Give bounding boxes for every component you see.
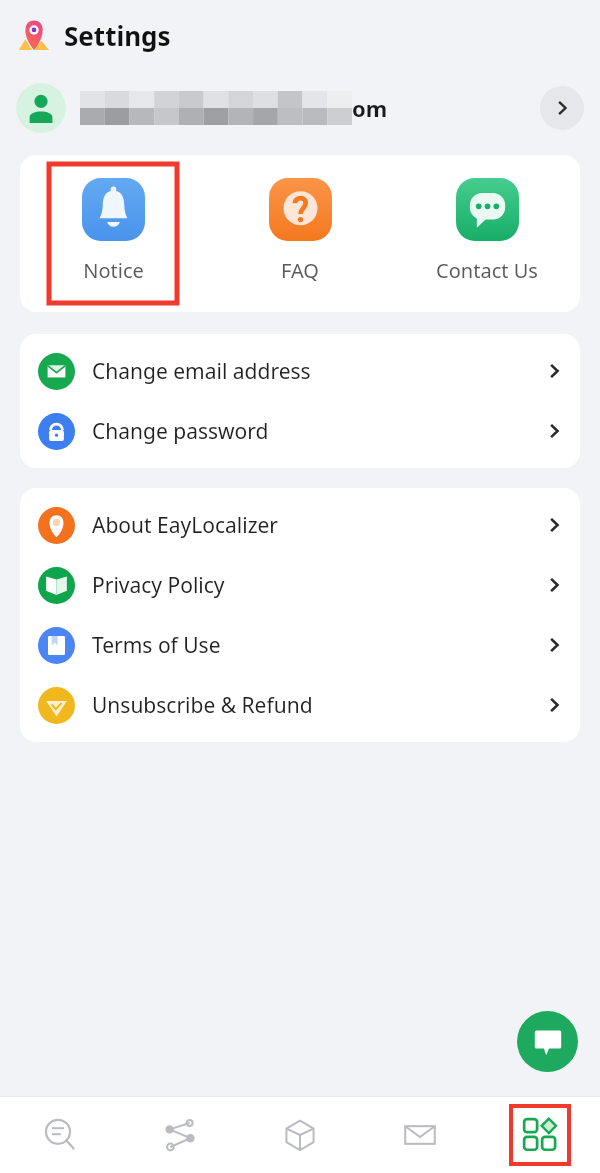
button[interactable]: About EayLocalizer <box>20 495 580 555</box>
button[interactable]: Notice <box>49 164 177 303</box>
staticText: Unsubscribe & Refund <box>92 691 546 720</box>
button[interactable]: FAQ <box>236 164 364 303</box>
staticText: FAQ <box>281 257 319 284</box>
button[interactable]: Unsubscribe & Refund <box>20 675 580 735</box>
staticText: Settings <box>64 18 171 53</box>
staticText: Change email address <box>92 357 546 386</box>
staticText: Terms of Use <box>92 631 546 660</box>
staticText: Privacy Policy <box>92 571 546 600</box>
button[interactable]: Share <box>120 1097 240 1173</box>
button[interactable]: om <box>0 70 600 146</box>
button[interactable]: More <box>511 1106 569 1164</box>
staticText: Contact Us <box>436 257 538 284</box>
button[interactable]: Contact Us <box>423 164 551 303</box>
button[interactable]: Products <box>240 1097 360 1173</box>
button[interactable]: Change email address <box>20 341 580 401</box>
button[interactable]: Messages <box>360 1097 480 1173</box>
button[interactable]: Search <box>0 1097 120 1173</box>
button[interactable]: Account details <box>540 86 584 130</box>
staticText: About EayLocalizer <box>92 511 546 540</box>
button[interactable]: Privacy Policy <box>20 555 580 615</box>
button[interactable]: Change password <box>20 401 580 461</box>
staticText: Notice <box>83 257 144 284</box>
button[interactable]: Chat support <box>517 1011 578 1072</box>
button[interactable]: Terms of Use <box>20 615 580 675</box>
staticText: om <box>352 93 388 123</box>
staticText: Change password <box>92 417 546 446</box>
